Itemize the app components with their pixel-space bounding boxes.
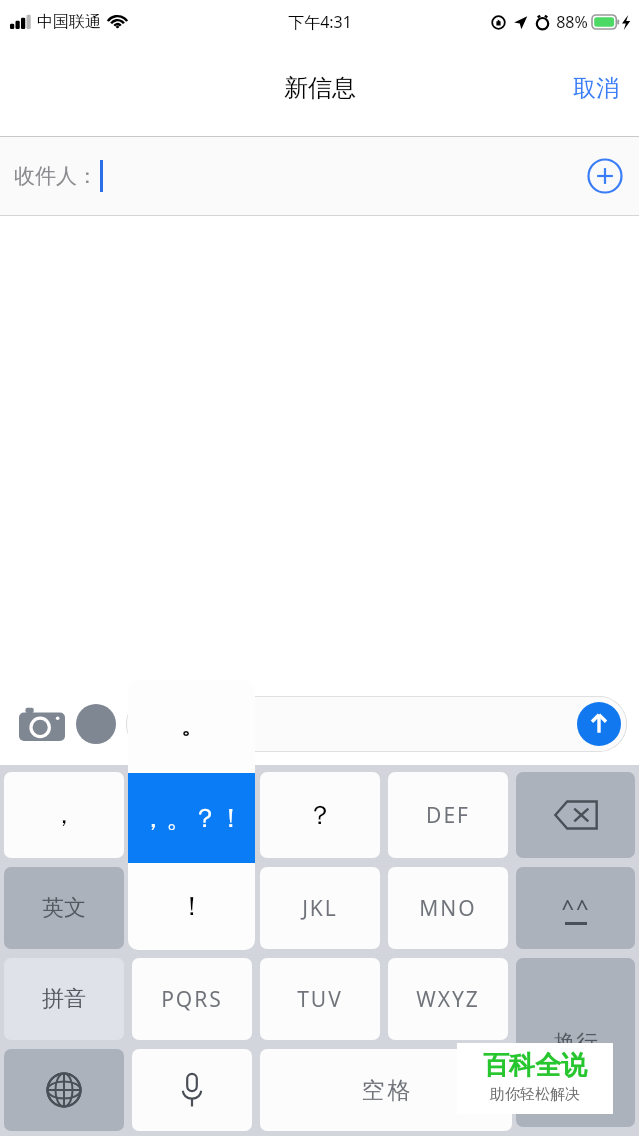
button[interactable]: TUV xyxy=(260,958,380,1040)
button[interactable]: JKL xyxy=(260,867,380,949)
staticText: 新信息 xyxy=(284,73,356,103)
button[interactable]: 英文 xyxy=(4,867,124,949)
staticText: 百科全说 xyxy=(483,1049,587,1082)
staticText: 拼音 xyxy=(42,985,86,1013)
staticText: ，。？！ xyxy=(140,802,244,835)
staticText: 收件人： xyxy=(14,163,98,189)
staticText: TUV xyxy=(297,985,343,1014)
button[interactable]: MNO xyxy=(388,867,508,949)
staticText: MNO xyxy=(419,894,477,923)
staticText: ， xyxy=(52,800,76,830)
staticText: 下午4:31 xyxy=(288,11,352,33)
button[interactable]: Send xyxy=(126,696,627,752)
staticText: 英文 xyxy=(42,894,86,922)
button[interactable]: ？ xyxy=(260,772,380,858)
staticText: WXYZ xyxy=(416,985,480,1014)
button[interactable]: 取消 xyxy=(553,64,639,113)
staticText: ！ xyxy=(179,890,205,923)
button[interactable]: 。 xyxy=(128,680,255,773)
staticText: 取消 xyxy=(573,74,619,103)
staticText: PQRS xyxy=(161,985,223,1014)
button[interactable]: App Store xyxy=(74,702,118,746)
button[interactable]: Add recipient xyxy=(585,156,625,196)
button[interactable]: Send xyxy=(575,700,623,748)
button[interactable]: Switch keyboard xyxy=(4,1049,124,1131)
button[interactable]: Voice input xyxy=(132,1049,252,1131)
button[interactable] xyxy=(132,772,252,858)
button[interactable]: ！ xyxy=(128,863,255,950)
button[interactable]: DEF xyxy=(388,772,508,858)
button[interactable]: WXYZ xyxy=(388,958,508,1040)
button[interactable]: ，。？！ xyxy=(128,773,255,863)
button[interactable]: 拼音 xyxy=(4,958,124,1040)
button[interactable] xyxy=(132,867,252,949)
button[interactable]: PQRS xyxy=(132,958,252,1040)
button[interactable]: Delete xyxy=(516,772,635,858)
staticText: 。 xyxy=(181,713,203,741)
button[interactable]: 换行 xyxy=(516,958,635,1127)
staticText: 助你轻松解决 xyxy=(490,1085,580,1104)
staticText: ？ xyxy=(307,799,333,832)
staticText: 空格 xyxy=(360,1076,412,1105)
staticText: 换行 xyxy=(554,1029,598,1057)
staticText: DEF xyxy=(426,801,470,830)
button[interactable]: Emoticons xyxy=(516,867,635,949)
staticText: JKL xyxy=(302,894,338,923)
staticText: ^^ xyxy=(561,892,591,922)
staticText: 中国联通 xyxy=(37,12,101,32)
button[interactable]: 空格 xyxy=(260,1049,512,1131)
staticText: 88% xyxy=(556,11,588,33)
button[interactable]: ， xyxy=(4,772,124,858)
button[interactable]: Camera xyxy=(14,696,70,752)
